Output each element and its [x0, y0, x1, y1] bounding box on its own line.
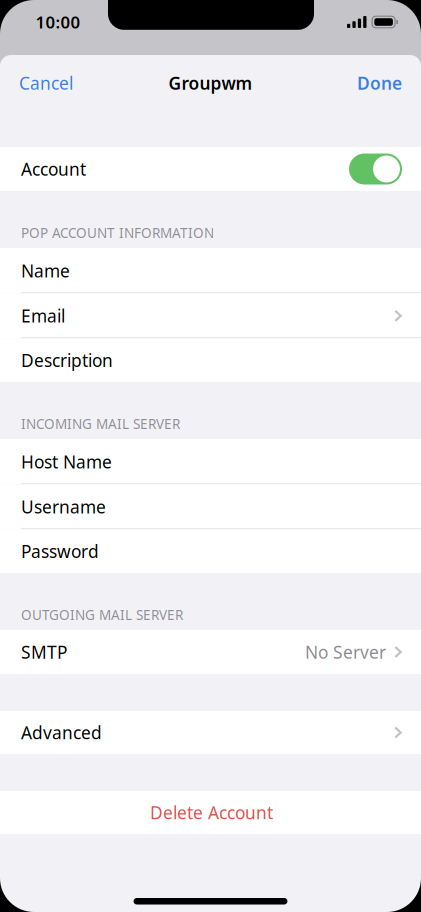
staticText: Host Name [21, 450, 112, 473]
staticText: Cancel [19, 71, 73, 94]
button[interactable]: Delete Account [0, 791, 421, 834]
staticText: Groupwm [168, 71, 252, 94]
staticText: Account [21, 157, 86, 180]
staticText: INCOMING MAIL SERVER [21, 415, 180, 433]
button[interactable]: Description [0, 338, 421, 382]
staticText: 10:00 [35, 11, 80, 33]
staticText: Description [21, 349, 113, 372]
staticText: Name [21, 259, 70, 282]
staticText: Password [21, 540, 99, 563]
staticText: POP ACCOUNT INFORMATION [21, 224, 214, 242]
button[interactable]: Done [345, 55, 421, 111]
staticText: OUTGOING MAIL SERVER [21, 606, 183, 624]
staticText: Done [357, 71, 402, 94]
staticText: Advanced [21, 721, 102, 744]
button[interactable]: Host Name [0, 439, 421, 484]
button[interactable]: Email [0, 293, 421, 338]
button[interactable]: Password [0, 529, 421, 573]
staticText: Delete Account [150, 801, 273, 824]
button[interactable]: Account [0, 147, 421, 191]
staticText: SMTP [21, 640, 67, 663]
button[interactable]: SMTP [0, 630, 421, 674]
staticText: No Server [305, 640, 386, 663]
button[interactable]: Username [0, 484, 421, 529]
button[interactable]: Cancel [0, 55, 85, 111]
button[interactable]: Advanced [0, 711, 421, 754]
button[interactable]: Name [0, 248, 421, 293]
staticText: Email [21, 304, 65, 327]
staticText: Username [21, 495, 106, 518]
